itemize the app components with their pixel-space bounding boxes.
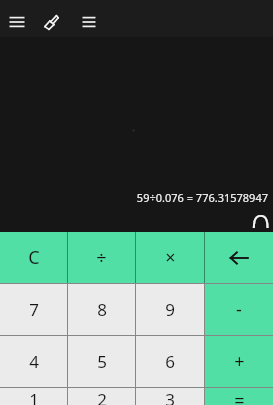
staticText: 1 — [29, 388, 39, 405]
staticText: ÷ — [96, 245, 107, 270]
staticText: 4 — [29, 350, 39, 373]
button[interactable]: Backspace — [205, 232, 273, 283]
button[interactable]: - — [205, 284, 273, 335]
button[interactable]: More options — [74, 7, 104, 37]
staticText: 59÷0.076 = 776.31578947 — [0, 190, 268, 205]
staticText: C — [28, 245, 40, 270]
staticText: 9 — [165, 298, 175, 321]
button[interactable]: Menu — [2, 7, 32, 37]
button[interactable]: 9 — [136, 284, 204, 335]
staticText: = — [234, 388, 245, 405]
button[interactable]: 3 — [136, 388, 204, 405]
button[interactable]: ÷ — [68, 232, 135, 283]
button[interactable]: 4 — [0, 336, 67, 387]
button[interactable]: 2 — [68, 388, 135, 405]
button[interactable]: 5 — [68, 336, 135, 387]
staticText: × — [165, 245, 176, 270]
button[interactable]: 7 — [0, 284, 67, 335]
staticText: 6 — [165, 350, 175, 373]
button[interactable]: × — [136, 232, 204, 283]
staticText: + — [234, 349, 245, 374]
button[interactable]: = — [205, 388, 273, 405]
button[interactable]: C — [0, 232, 67, 283]
staticText: 0 — [251, 208, 271, 228]
button[interactable]: 1 — [0, 388, 67, 405]
button[interactable]: 8 — [68, 284, 135, 335]
button[interactable]: 6 — [136, 336, 204, 387]
staticText: 8 — [97, 298, 107, 321]
staticText: - — [236, 297, 242, 322]
button[interactable]: + — [205, 336, 273, 387]
staticText: 7 — [29, 298, 39, 321]
staticText: 5 — [97, 350, 107, 373]
button[interactable]: Theme — [36, 7, 66, 37]
staticText: 2 — [97, 388, 107, 405]
staticText: 3 — [165, 388, 175, 405]
